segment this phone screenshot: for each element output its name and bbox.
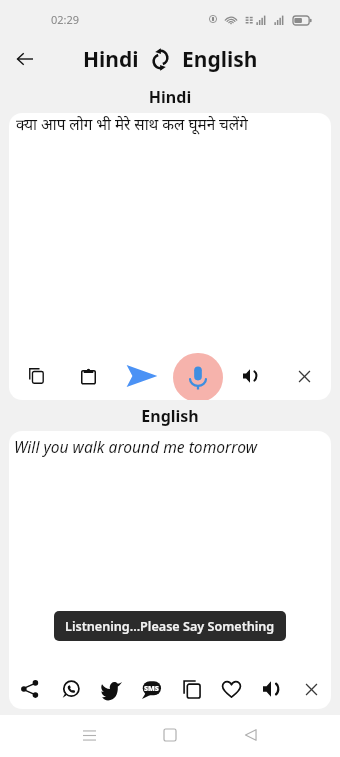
button[interactable]: Speak xyxy=(223,354,277,398)
button[interactable]: Share xyxy=(9,669,50,709)
button[interactable]: Home xyxy=(155,720,185,750)
button[interactable]: Back xyxy=(11,45,39,73)
button[interactable]: English xyxy=(182,45,258,74)
button[interactable]: Twitter xyxy=(91,669,131,709)
button[interactable]: Copy xyxy=(171,669,211,709)
button[interactable]: Close xyxy=(291,669,331,709)
staticText: SMS xyxy=(144,684,159,694)
button[interactable]: Close xyxy=(277,354,331,398)
button[interactable]: SMS xyxy=(131,669,171,709)
button[interactable]: Swap languages xyxy=(151,50,170,69)
button[interactable]: Send xyxy=(115,354,169,398)
button[interactable]: Back xyxy=(236,720,266,750)
staticText: English xyxy=(0,405,340,427)
staticText: क्या आप लोग भी मेरे साथ कल घूमने चलेंगे xyxy=(16,114,248,135)
staticText: Will you walk around me tomorrow xyxy=(14,436,257,457)
button[interactable]: Copy xyxy=(9,354,62,398)
button[interactable]: Favorite xyxy=(211,669,251,709)
button[interactable]: Recents xyxy=(74,720,104,750)
button[interactable]: Microphone xyxy=(169,351,223,400)
button[interactable]: Paste xyxy=(62,354,115,398)
staticText: Hindi xyxy=(0,86,340,108)
staticText: Listnening...Please Say Something xyxy=(65,618,275,635)
button[interactable]: Hindi xyxy=(83,45,139,74)
button[interactable]: Speak xyxy=(251,669,291,709)
button[interactable]: WhatsApp xyxy=(50,669,91,709)
staticText: 02:29 xyxy=(51,12,80,27)
